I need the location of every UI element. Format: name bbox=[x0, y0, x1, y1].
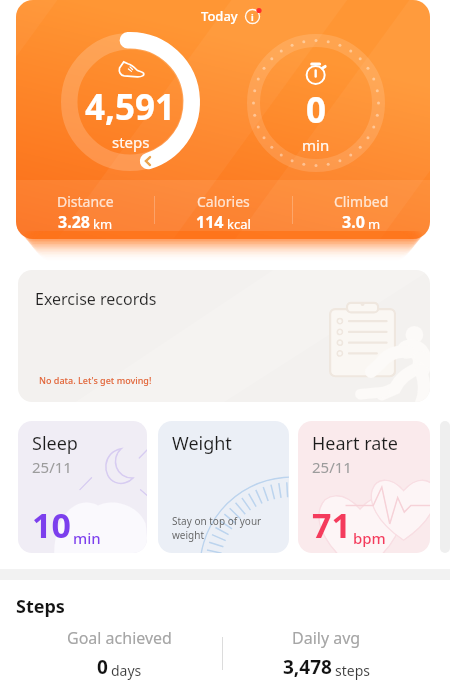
other: Steps bbox=[60, 32, 200, 172]
staticText: 3,478 bbox=[283, 654, 332, 680]
staticText: 0 bbox=[97, 654, 108, 680]
staticText: 25/11 bbox=[32, 457, 72, 477]
button[interactable]: Weight bbox=[158, 421, 289, 553]
button[interactable]: Exercise records bbox=[18, 270, 430, 402]
staticText: 71 bbox=[312, 502, 351, 548]
staticText: steps bbox=[335, 661, 370, 680]
staticText: 3.0 bbox=[342, 211, 365, 233]
staticText: Weight bbox=[172, 431, 232, 456]
staticText: Goal achieved bbox=[67, 627, 172, 649]
staticText: min bbox=[73, 528, 101, 548]
staticText: 3.28 bbox=[58, 211, 90, 233]
staticText: 25/11 bbox=[312, 457, 352, 477]
staticText: Distance bbox=[57, 192, 114, 211]
staticText: km bbox=[93, 215, 113, 233]
staticText: min bbox=[302, 135, 330, 155]
staticText: Climbed bbox=[334, 192, 389, 211]
staticText: 114 bbox=[196, 211, 224, 233]
staticText: days bbox=[111, 661, 142, 680]
staticText: Daily avg bbox=[292, 627, 361, 649]
staticText: 10 bbox=[32, 502, 71, 548]
staticText: Stay on top of your weight bbox=[172, 514, 262, 542]
staticText: Calories bbox=[197, 192, 250, 211]
button[interactable]: Sleep bbox=[18, 421, 147, 553]
staticText: Heart rate bbox=[312, 431, 399, 456]
staticText: 0 bbox=[306, 86, 327, 134]
button[interactable]: Today bbox=[16, 0, 430, 239]
staticText: Steps bbox=[16, 594, 65, 619]
other: Exercise minutes bbox=[247, 34, 385, 172]
staticText: 4,591 bbox=[85, 83, 176, 131]
staticText: Sleep bbox=[32, 431, 78, 456]
staticText: m bbox=[368, 215, 381, 233]
staticText: Today bbox=[201, 7, 238, 25]
staticText: kcal bbox=[227, 215, 251, 233]
staticText: bpm bbox=[353, 528, 386, 548]
button[interactable]: Heart rate bbox=[298, 421, 430, 553]
staticText: i bbox=[251, 11, 254, 23]
staticText: steps bbox=[112, 132, 150, 152]
staticText: No data. Let's get moving! bbox=[39, 374, 152, 386]
staticText: Exercise records bbox=[35, 288, 157, 310]
